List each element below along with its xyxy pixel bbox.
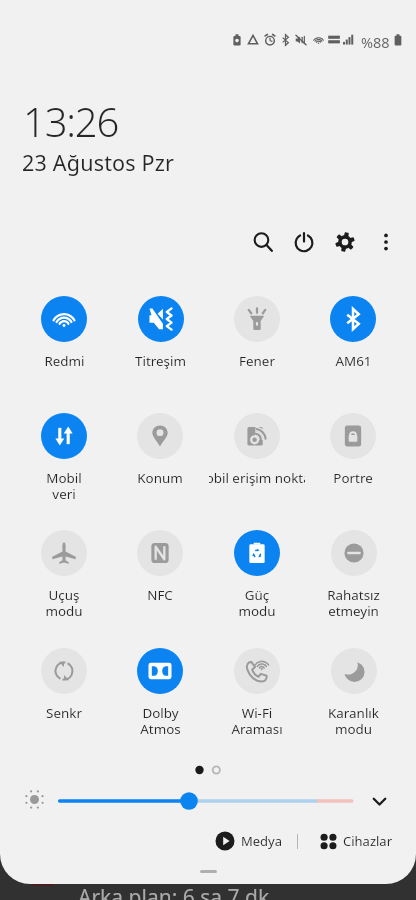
button[interactable]: Fener: [209, 292, 305, 387]
staticText: AM61: [335, 352, 372, 370]
staticText: Wi-Fi Araması: [231, 704, 283, 738]
staticText: Senkr: [46, 704, 82, 722]
button[interactable]: More options: [375, 231, 397, 253]
staticText: Dolby Atmos: [140, 704, 181, 738]
staticText: Mobil erişim noktası: [209, 469, 305, 487]
staticText: Rahatsız etmeyin: [327, 586, 380, 620]
button[interactable]: Konum: [112, 409, 208, 504]
button[interactable]: Senkr: [16, 644, 112, 739]
button[interactable]: Settings: [334, 231, 356, 253]
button[interactable]: Mobil erişim noktası: [209, 409, 305, 504]
button[interactable]: Portre: [305, 409, 401, 504]
staticText: Fener: [239, 352, 275, 370]
button[interactable]: Cihazlar: [320, 832, 393, 850]
button[interactable]: Brightness: [56, 790, 356, 812]
button[interactable]: Medya: [215, 831, 283, 851]
staticText: Arka plan: 6 sa 7 dk: [78, 883, 270, 900]
button[interactable]: Power: [293, 231, 315, 253]
staticText: 13:26: [23, 94, 119, 148]
staticText: %88: [361, 32, 390, 48]
staticText: Cihazlar: [343, 832, 393, 850]
button[interactable]: Mobil veri: [16, 409, 112, 504]
button[interactable]: Redmi: [16, 292, 112, 387]
button[interactable]: Wi-Fi Araması: [209, 644, 305, 739]
staticText: NFC: [147, 586, 173, 604]
staticText: Konum: [137, 469, 183, 487]
staticText: Karanlık modu: [328, 704, 379, 738]
button[interactable]: AM61: [305, 292, 401, 387]
button[interactable]: NFC: [112, 526, 208, 621]
staticText: Mobil veri: [46, 469, 82, 503]
staticText: 23 Ağustos Pzr: [22, 148, 175, 177]
button[interactable]: Expand: [368, 790, 391, 813]
button[interactable]: Rahatsız etmeyin: [305, 526, 401, 621]
button[interactable]: Titreşim: [112, 292, 208, 387]
staticText: Güç modu: [238, 586, 276, 620]
staticText: Redmi: [44, 352, 85, 370]
button[interactable]: Dolby Atmos: [112, 644, 208, 739]
button[interactable]: Uçuş modu: [16, 526, 112, 621]
staticText: Portre: [333, 469, 373, 487]
staticText: Uçuş modu: [45, 586, 83, 620]
button[interactable]: Karanlık modu: [305, 644, 401, 739]
button[interactable]: Search: [252, 231, 274, 253]
staticText: Titreşim: [135, 352, 186, 370]
staticText: Medya: [241, 832, 283, 850]
button[interactable]: Güç modu: [209, 526, 305, 621]
